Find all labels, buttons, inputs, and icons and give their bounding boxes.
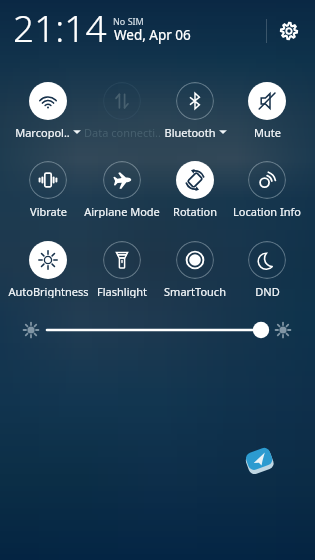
button[interactable]: Data connecti.. xyxy=(77,79,167,139)
staticText: Vibrate xyxy=(30,204,67,218)
staticText: Airplane Mode xyxy=(84,204,160,218)
staticText: Flashlight xyxy=(97,284,147,298)
button[interactable]: Airplane Mode xyxy=(77,158,167,218)
staticText: No SIM xyxy=(113,15,144,27)
button[interactable]: SmartTouch xyxy=(150,238,240,298)
button[interactable]: DND xyxy=(222,238,312,298)
staticText: 21:14 xyxy=(13,2,107,52)
button[interactable]: AutoBrightness xyxy=(3,238,93,298)
staticText: Mute xyxy=(254,125,281,139)
button[interactable]: Settings xyxy=(272,14,305,47)
staticText: Marcopol.. xyxy=(15,125,70,139)
button[interactable] xyxy=(45,320,271,340)
staticText: AutoBrightness xyxy=(8,284,89,298)
button[interactable]: Flashlight xyxy=(77,238,167,298)
staticText: Location Info xyxy=(233,204,301,218)
button[interactable]: Bluetooth xyxy=(150,79,240,139)
staticText: Bluetooth xyxy=(164,125,216,139)
button[interactable]: Location Info xyxy=(222,158,312,218)
button[interactable]: Vibrate xyxy=(3,158,93,218)
staticText: Rotation xyxy=(173,204,217,218)
staticText: Data connecti.. xyxy=(84,125,161,139)
staticText: SmartTouch xyxy=(164,284,226,298)
button[interactable]: Marcopol.. xyxy=(3,79,93,139)
staticText: Wed, Apr 06 xyxy=(114,26,191,44)
staticText: DND xyxy=(255,284,280,298)
button[interactable]: Mute xyxy=(222,79,312,139)
button[interactable]: Rotation xyxy=(150,158,240,218)
